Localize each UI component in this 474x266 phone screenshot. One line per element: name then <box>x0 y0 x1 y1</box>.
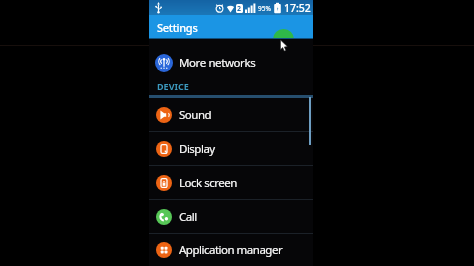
staticText: DEVICE <box>157 80 189 92</box>
staticText: 17:52 <box>284 1 311 15</box>
button[interactable]: Lock screen <box>149 166 313 199</box>
button[interactable]: Sound <box>149 98 313 131</box>
staticText: 2 <box>237 4 242 13</box>
button[interactable]: Application manager <box>149 234 313 266</box>
staticText: Settings <box>157 20 198 35</box>
staticText: Application manager <box>179 242 283 258</box>
staticText: Call <box>179 209 197 225</box>
button[interactable]: More networks <box>149 47 313 78</box>
staticText: Lock screen <box>179 175 237 191</box>
staticText: Display <box>179 141 215 157</box>
button[interactable]: Call <box>149 200 313 233</box>
staticText: More networks <box>179 55 256 71</box>
staticText: Sound <box>179 107 212 123</box>
button[interactable]: Display <box>149 132 313 165</box>
staticText: 95% <box>258 4 271 13</box>
